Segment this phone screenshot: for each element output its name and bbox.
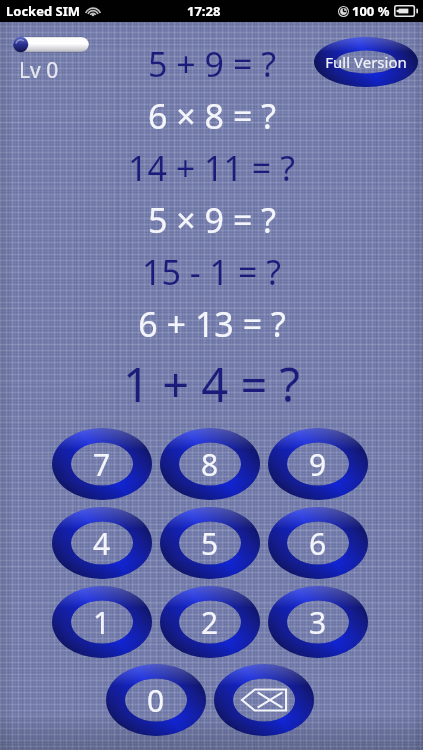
staticText: 8 [201, 444, 219, 485]
staticText: 5 + 9 = ? [148, 41, 276, 87]
button[interactable]: 9 [268, 428, 368, 500]
staticText: 2 [201, 602, 219, 643]
staticText: 0 [147, 680, 165, 721]
button[interactable]: Full Version [314, 37, 418, 87]
button[interactable]: 6 [268, 507, 368, 579]
button[interactable] [13, 37, 89, 52]
button[interactable]: Backspace [214, 664, 314, 736]
button[interactable]: 5 [160, 507, 260, 579]
staticText: Locked SIM [6, 2, 80, 20]
staticText: 9 [309, 444, 327, 485]
staticText: Lv 0 [19, 56, 59, 85]
staticText: 17:28 [187, 2, 221, 20]
staticText: 5 × 9 = ? [148, 197, 276, 243]
staticText: 6 + 13 = ? [138, 301, 286, 347]
staticText: 15 - 1 = ? [142, 249, 281, 295]
button[interactable]: 1 [52, 586, 152, 658]
staticText: 6 [309, 523, 327, 564]
button[interactable]: 4 [52, 507, 152, 579]
staticText: 6 × 8 = ? [148, 93, 276, 139]
staticText: 1 [93, 602, 111, 643]
staticText: 5 [201, 523, 219, 564]
button[interactable]: 2 [160, 586, 260, 658]
button[interactable]: 3 [268, 586, 368, 658]
staticText: 100 % [352, 2, 390, 20]
button[interactable]: 0 [106, 664, 206, 736]
staticText: 3 [309, 602, 327, 643]
staticText: 14 + 11 = ? [128, 145, 295, 191]
button[interactable]: 8 [160, 428, 260, 500]
staticText: 7 [93, 444, 111, 485]
staticText: 1 + 4 = ? [123, 352, 300, 414]
button[interactable]: 7 [52, 428, 152, 500]
staticText: 4 [93, 523, 111, 564]
staticText: Full Version [325, 52, 407, 72]
